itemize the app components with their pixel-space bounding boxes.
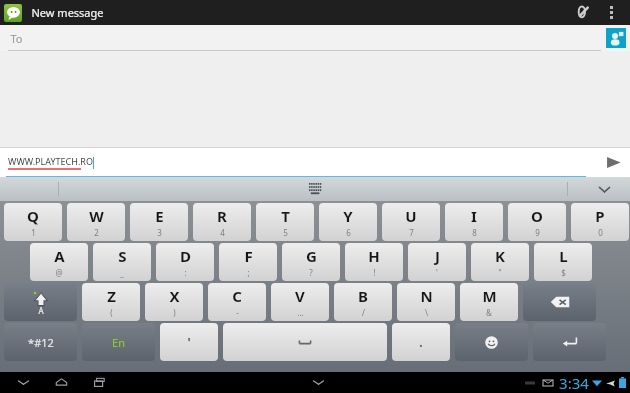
- staticText: En: [112, 335, 125, 350]
- button[interactable]: F: [219, 243, 277, 281]
- button[interactable]: J: [408, 243, 466, 281]
- staticText: K: [495, 246, 505, 266]
- button[interactable]: X: [145, 283, 203, 321]
- button[interactable]: Messaging: [4, 4, 22, 22]
- staticText: WWW.PLAYTECH.RO: [8, 155, 93, 167]
- button[interactable]: O: [508, 203, 566, 241]
- button[interactable]: Hide keyboard: [578, 177, 630, 201]
- staticText: _: [120, 267, 124, 278]
- staticText: $: [561, 267, 566, 278]
- button[interactable]: Emoji: [455, 323, 528, 361]
- staticText: 5: [283, 227, 288, 238]
- staticText: @: [55, 267, 63, 278]
- button[interactable]: Home: [48, 372, 74, 393]
- button[interactable]: WWW.PLAYTECH.RO: [0, 148, 596, 177]
- staticText: M: [482, 286, 497, 306]
- button[interactable]: V: [271, 283, 329, 321]
- button[interactable]: Shift: [4, 283, 77, 321]
- staticText: 9: [535, 227, 540, 238]
- staticText: 6: [346, 227, 351, 238]
- staticText: W: [89, 206, 104, 226]
- button[interactable]: Hide keyboard: [305, 372, 331, 393]
- staticText: New message: [31, 5, 104, 20]
- button[interactable]: B: [334, 283, 392, 321]
- staticText: T: [281, 206, 290, 226]
- staticText: ": [498, 267, 502, 278]
- staticText: D: [180, 246, 191, 266]
- staticText: 8: [472, 227, 477, 238]
- staticText: 2: [94, 227, 99, 238]
- button[interactable]: A: [30, 243, 88, 281]
- staticText: &: [486, 307, 492, 318]
- button[interactable]: Send: [596, 148, 630, 177]
- staticText: U: [405, 206, 417, 226]
- button[interactable]: Space: [223, 323, 387, 361]
- button[interactable]: Add recipient: [605, 27, 627, 49]
- staticText: -: [236, 307, 239, 318]
- button[interactable]: P: [571, 203, 629, 241]
- staticText: P: [595, 206, 605, 226]
- button[interactable]: L: [534, 243, 592, 281]
- staticText: ': [436, 267, 438, 278]
- staticText: E: [155, 206, 164, 226]
- button[interactable]: I: [445, 203, 503, 241]
- button[interactable]: Attach: [568, 0, 598, 25]
- staticText: B: [358, 286, 368, 306]
- staticText: R: [217, 206, 227, 226]
- staticText: L: [559, 246, 568, 266]
- button[interactable]: Enter: [533, 323, 606, 361]
- button[interactable]: M: [460, 283, 518, 321]
- staticText: J: [435, 246, 440, 266]
- button[interactable]: G: [282, 243, 340, 281]
- button[interactable]: Y: [319, 203, 377, 241]
- button[interactable]: D: [156, 243, 214, 281]
- button[interactable]: Q: [4, 203, 62, 241]
- button[interactable]: K: [471, 243, 529, 281]
- button[interactable]: N: [397, 283, 455, 321]
- staticText: ): [173, 307, 176, 318]
- staticText: 3: [157, 227, 162, 238]
- staticText: 3:34: [559, 373, 589, 393]
- button[interactable]: T: [256, 203, 314, 241]
- button[interactable]: Symbols: [4, 323, 77, 361]
- staticText: ;: [247, 267, 250, 278]
- button[interactable]: H: [345, 243, 403, 281]
- button[interactable]: S: [93, 243, 151, 281]
- button[interactable]: C: [208, 283, 266, 321]
- button[interactable]: Keyboard settings: [303, 177, 327, 201]
- button[interactable]: More options: [598, 0, 624, 25]
- staticText: ...: [297, 307, 304, 318]
- staticText: Q: [27, 206, 39, 226]
- button[interactable]: E: [130, 203, 188, 241]
- staticText: 7: [409, 227, 414, 238]
- staticText: ?: [309, 267, 313, 278]
- staticText: ': [187, 334, 191, 350]
- button[interactable]: Backspace: [523, 283, 596, 321]
- staticText: Y: [343, 206, 353, 226]
- staticText: 4: [220, 227, 225, 238]
- button[interactable]: U: [382, 203, 440, 241]
- staticText: X: [169, 286, 180, 306]
- button[interactable]: Language: [82, 323, 155, 361]
- staticText: G: [306, 246, 317, 266]
- staticText: V: [295, 286, 305, 306]
- staticText: H: [368, 246, 380, 266]
- button[interactable]: Z: [82, 283, 140, 321]
- button[interactable]: Back: [10, 372, 36, 393]
- staticText: To: [10, 31, 23, 46]
- staticText: S: [118, 246, 127, 266]
- staticText: N: [420, 286, 433, 306]
- button[interactable]: ': [160, 323, 218, 361]
- button[interactable]: W: [67, 203, 125, 241]
- button[interactable]: R: [193, 203, 251, 241]
- button[interactable]: .: [392, 323, 450, 361]
- button[interactable]: Recent apps: [86, 372, 112, 393]
- staticText: /: [362, 307, 365, 318]
- staticText: F: [244, 246, 253, 266]
- staticText: O: [531, 206, 543, 226]
- staticText: \: [425, 307, 428, 318]
- staticText: .: [419, 334, 423, 350]
- staticText: Z: [107, 286, 116, 306]
- button[interactable]: To: [0, 25, 605, 51]
- staticText: C: [232, 286, 242, 306]
